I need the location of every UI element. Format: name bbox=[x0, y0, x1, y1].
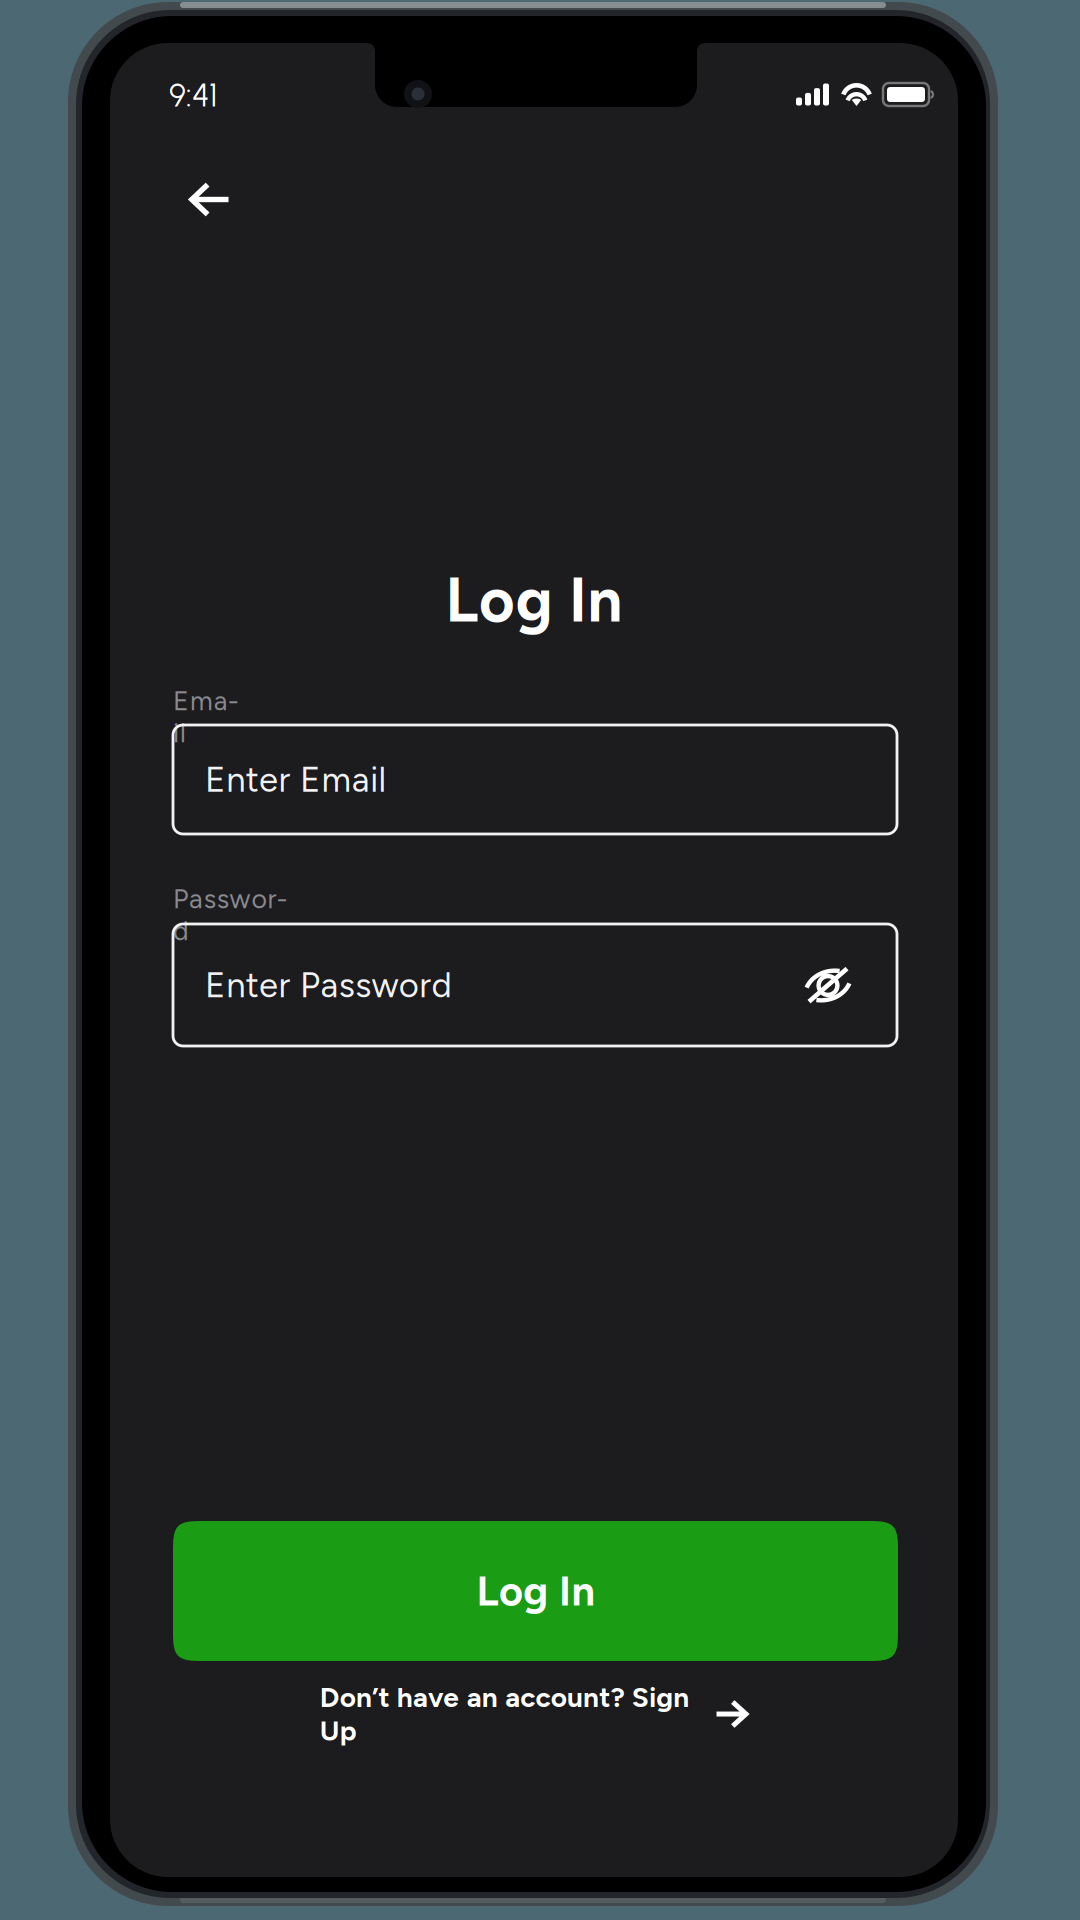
staticText: Email bbox=[173, 685, 242, 717]
button[interactable]: Log In bbox=[173, 1521, 898, 1661]
staticText: 9:41 bbox=[169, 76, 217, 114]
staticText: Don’t have an account? Sign Up bbox=[320, 1680, 689, 1748]
staticText: Log In bbox=[476, 1566, 594, 1616]
button[interactable]: Back bbox=[171, 162, 249, 237]
staticText: Password bbox=[173, 883, 293, 915]
button[interactable]: Don’t have an account? Sign Up bbox=[320, 1680, 748, 1748]
staticText: Enter Email bbox=[205, 759, 386, 800]
staticText: Log In bbox=[445, 563, 622, 637]
staticText: Enter Password bbox=[205, 964, 451, 1006]
button[interactable]: Show password bbox=[792, 954, 864, 1016]
